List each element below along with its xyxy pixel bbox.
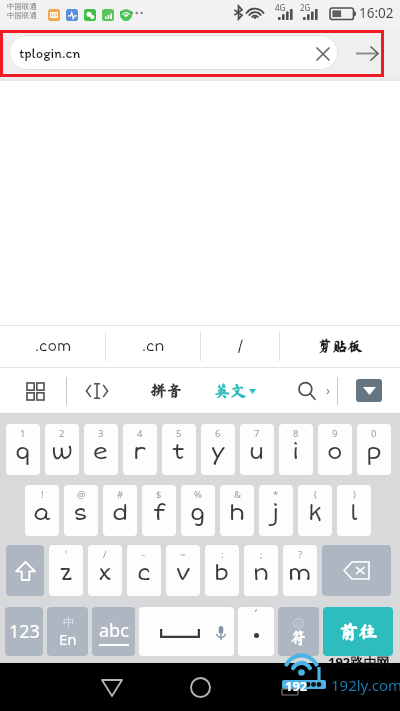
button[interactable]: # [103, 485, 137, 536]
staticText: 123 [9, 619, 40, 644]
staticText: m [288, 559, 312, 587]
button[interactable]: 符 [278, 607, 319, 656]
button[interactable]: ) [337, 485, 371, 536]
staticText: ! [41, 488, 44, 501]
button[interactable]: Shift [6, 545, 44, 596]
staticText: o [327, 438, 343, 466]
button[interactable]: 0 [357, 424, 391, 475]
button[interactable]: / [88, 545, 122, 596]
button[interactable]: Backspace [322, 545, 391, 596]
staticText: y [211, 438, 225, 466]
staticText: › [326, 381, 331, 399]
button[interactable]: 7 [240, 424, 274, 475]
staticText: d [112, 499, 129, 527]
staticText: 前往 [339, 622, 378, 641]
staticText: En [59, 629, 77, 649]
button[interactable]: 6 [201, 424, 235, 475]
button[interactable]: % [181, 485, 215, 536]
button[interactable]: ( [298, 485, 332, 536]
staticText: 拼音 [150, 383, 183, 399]
staticText: r [133, 438, 147, 466]
button[interactable]: tplogin.cn [9, 35, 338, 70]
button[interactable]: Period [238, 607, 274, 656]
button[interactable]: 5 [162, 424, 196, 475]
button[interactable]: ; [244, 545, 278, 596]
button[interactable]: 拼音 [142, 369, 190, 413]
staticText: : [221, 548, 224, 561]
button[interactable]: 8 [279, 424, 313, 475]
staticText: 192ly.com [331, 675, 400, 695]
button[interactable]: 前往 [323, 607, 393, 656]
staticText: 192 [285, 677, 308, 695]
button[interactable]: Search [287, 371, 327, 411]
staticText: 1 [20, 427, 26, 440]
button[interactable]: 2 [45, 424, 79, 475]
staticText: 2G [300, 2, 311, 13]
button[interactable]: * [259, 485, 293, 536]
staticText: 剪贴板 [317, 339, 363, 354]
staticText: / [103, 548, 107, 561]
button[interactable]: - [127, 545, 161, 596]
button[interactable]: : [205, 545, 239, 596]
button[interactable]: Move cursor [75, 369, 119, 413]
button[interactable]: ~ [166, 545, 200, 596]
button[interactable]: 1 [6, 424, 40, 475]
staticText: c [137, 559, 152, 587]
staticText: ) [353, 488, 356, 501]
staticText: ~ [180, 548, 186, 561]
staticText: n [253, 559, 270, 587]
staticText: f [153, 499, 166, 527]
staticText: b [214, 559, 230, 587]
button[interactable]: $ [142, 485, 176, 536]
button[interactable]: Back [91, 667, 132, 708]
button[interactable]: ! [25, 485, 59, 536]
staticText: w [51, 438, 73, 466]
button[interactable]: Clear text [310, 41, 335, 66]
staticText: e [93, 438, 109, 466]
staticText: 4G [275, 2, 286, 13]
staticText: 4 [137, 427, 143, 440]
staticText: l [350, 499, 358, 527]
button[interactable]: Home [180, 667, 221, 708]
button[interactable]: ' [49, 545, 83, 596]
staticText: @ [77, 488, 86, 501]
staticText: ( [314, 488, 317, 501]
button[interactable]: .cn [106, 325, 201, 368]
staticText: 2 [59, 427, 65, 440]
button[interactable]: 剪贴板 [280, 325, 400, 368]
button[interactable]: 3 [84, 424, 118, 475]
button[interactable]: 123 [5, 607, 43, 656]
staticText: / [237, 338, 244, 355]
staticText: i [292, 438, 300, 466]
staticText: # [117, 488, 124, 501]
staticText: g [190, 499, 206, 527]
button[interactable]: ? [283, 545, 317, 596]
button[interactable]: 4 [123, 424, 157, 475]
button[interactable]: @ [64, 485, 98, 536]
button[interactable]: 中 [47, 607, 88, 656]
staticText: ' [65, 548, 68, 561]
button[interactable]: Hide keyboard [356, 379, 382, 402]
button[interactable]: 英文 [214, 369, 270, 413]
button[interactable]: 9 [318, 424, 352, 475]
button[interactable]: Go [354, 41, 380, 65]
staticText: 中国联通 [7, 2, 37, 11]
staticText: 3 [98, 427, 104, 440]
staticText: 中 [63, 615, 74, 629]
staticText: tplogin.cn [19, 44, 81, 61]
button[interactable]: / [201, 325, 280, 368]
button[interactable]: .com [0, 325, 106, 368]
staticText: 符 [290, 630, 307, 646]
button[interactable]: Space [139, 607, 234, 656]
staticText: & [234, 488, 241, 501]
staticText: 0 [371, 427, 377, 440]
staticText: * [273, 488, 279, 501]
staticText: q [15, 438, 31, 466]
button[interactable]: abc [92, 607, 135, 656]
staticText: u [249, 438, 265, 466]
button[interactable]: & [220, 485, 254, 536]
staticText: 英文 [214, 383, 247, 399]
staticText: ; [260, 548, 263, 561]
button[interactable]: Keyboard layout [13, 369, 57, 413]
staticText: 9 [332, 427, 338, 440]
